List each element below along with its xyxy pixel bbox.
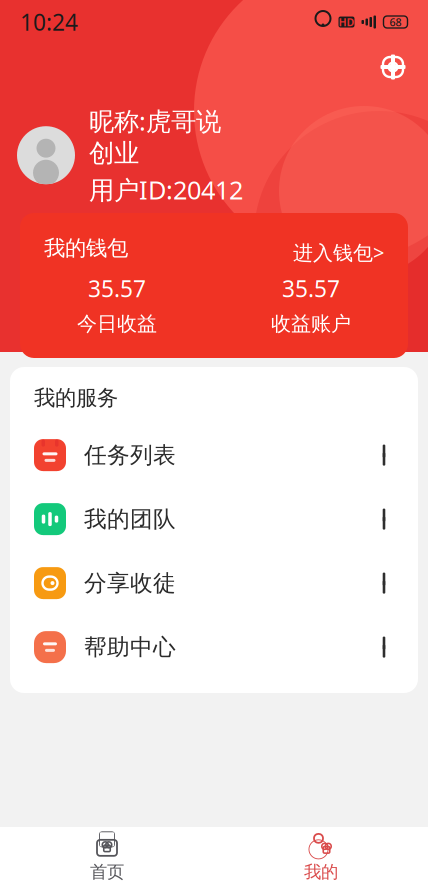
staticText: 35.57	[88, 273, 146, 303]
staticText: 我的钱包	[44, 235, 128, 261]
staticText: 分享收徒	[84, 569, 176, 597]
staticText: 我的团队	[84, 505, 176, 533]
staticText: HD	[338, 15, 354, 29]
button[interactable]: 我的钱包	[20, 213, 408, 358]
staticText: 我的	[304, 861, 338, 883]
button[interactable]: Settings	[370, 44, 416, 90]
staticText: 今日收益	[77, 311, 157, 336]
button[interactable]: 任务列表	[10, 423, 418, 487]
staticText: 用户ID:20412	[89, 173, 243, 206]
staticText: 昵称:虎哥说创业	[89, 104, 221, 169]
staticText: 首页	[90, 861, 124, 883]
staticText: 68	[389, 15, 401, 29]
staticText: 进入钱包>	[293, 239, 384, 265]
staticText: 帮助中心	[84, 633, 176, 661]
button[interactable]: 首页	[0, 827, 214, 887]
staticText: 收益账户	[271, 311, 351, 336]
button[interactable]: 帮助中心	[10, 615, 418, 679]
staticText: 任务列表	[84, 441, 176, 469]
staticText: 10:24	[20, 7, 78, 37]
staticText: 35.57	[282, 273, 340, 303]
button[interactable]: 分享收徒	[10, 551, 418, 615]
button[interactable]: 我的团队	[10, 487, 418, 551]
staticText: 我的服务	[34, 385, 118, 411]
button[interactable]: 我的	[214, 827, 428, 887]
